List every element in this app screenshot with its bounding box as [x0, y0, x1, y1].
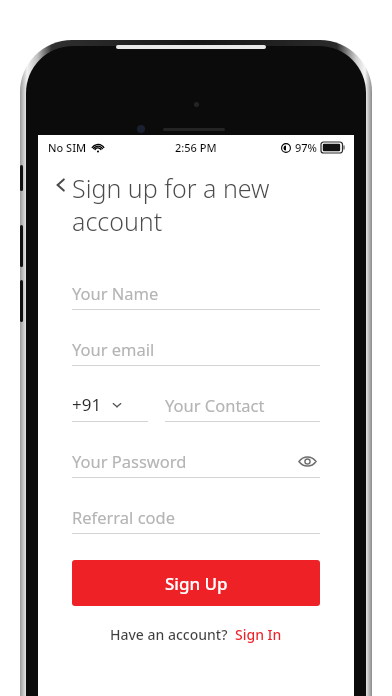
staticText: Referral code [72, 506, 176, 528]
button[interactable]: Your Password [72, 444, 320, 478]
staticText: Sign up for a new account [72, 171, 340, 238]
staticText: No SIM [48, 140, 87, 155]
button[interactable]: Your email [72, 332, 320, 366]
button[interactable]: Your Contact [165, 388, 320, 422]
button[interactable]: Back [50, 174, 72, 196]
staticText: Your Name [72, 282, 159, 304]
button[interactable]: Your Name [72, 276, 320, 310]
button[interactable]: Sign Up [72, 560, 320, 606]
staticText: Sign Up [165, 572, 228, 595]
staticText: Your Contact [165, 394, 265, 416]
staticText: Sign In [235, 625, 282, 644]
staticText: Your email [72, 338, 155, 360]
staticText: +91 [72, 393, 102, 416]
button[interactable]: Sign In [235, 625, 282, 644]
staticText: Your Password [72, 450, 187, 472]
button[interactable]: +91 [72, 388, 148, 422]
staticText: 97% [295, 140, 317, 155]
staticText: Have an account? [110, 625, 228, 644]
staticText: 2:56 PM [175, 140, 217, 155]
button[interactable]: Show password [294, 448, 320, 474]
button[interactable]: Referral code [72, 500, 320, 534]
